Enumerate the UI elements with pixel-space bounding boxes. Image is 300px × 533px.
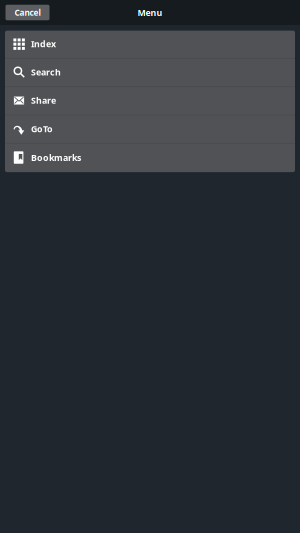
button[interactable]: GoTo (5, 115, 295, 144)
staticText: Bookmarks (31, 152, 81, 164)
button[interactable]: Share (5, 87, 295, 115)
button[interactable]: Bookmarks (5, 144, 295, 172)
staticText: Index (31, 38, 56, 50)
staticText: Menu (137, 6, 162, 18)
staticText: GoTo (31, 123, 53, 135)
button[interactable]: Search (5, 59, 295, 87)
staticText: Share (31, 94, 56, 106)
staticText: Search (31, 66, 61, 78)
staticText: Cancel (14, 7, 40, 18)
button[interactable]: Index (5, 31, 295, 59)
button[interactable]: Cancel (5, 5, 49, 20)
